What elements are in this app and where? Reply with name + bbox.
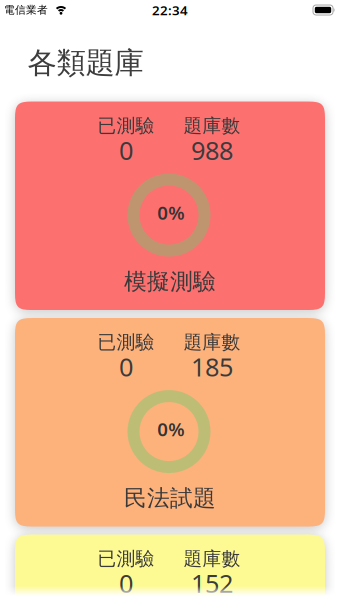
- button[interactable]: 已測驗: [15, 534, 325, 604]
- staticText: 0%: [157, 417, 184, 441]
- staticText: 題庫數: [183, 547, 240, 570]
- staticText: 0%: [157, 200, 184, 225]
- button[interactable]: 已測驗: [15, 318, 325, 526]
- staticText: 題庫數: [183, 114, 240, 137]
- staticText: 已測驗: [97, 547, 154, 570]
- button[interactable]: 已測驗: [15, 101, 325, 310]
- staticText: 各類題庫: [27, 45, 143, 81]
- staticText: 民法試題: [124, 484, 216, 512]
- staticText: 已測驗: [97, 114, 154, 137]
- staticText: 22:34: [152, 1, 188, 19]
- staticText: 模擬測驗: [124, 268, 216, 296]
- staticText: 185: [191, 350, 233, 384]
- staticText: 152: [191, 566, 233, 600]
- staticText: 題庫數: [183, 331, 240, 354]
- staticText: 0: [119, 133, 133, 167]
- staticText: 988: [191, 133, 233, 167]
- staticText: 電信業者: [4, 3, 48, 16]
- staticText: 已測驗: [97, 331, 154, 354]
- staticText: 0: [119, 566, 133, 600]
- staticText: 0: [119, 350, 133, 384]
